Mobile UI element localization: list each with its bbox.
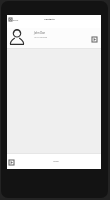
staticText: Back bbox=[13, 18, 19, 21]
button[interactable]: Open contact bbox=[92, 37, 97, 42]
button[interactable]: John Doe bbox=[7, 28, 101, 48]
staticText: +27123456789 bbox=[34, 36, 47, 39]
staticText: Home bbox=[53, 160, 59, 163]
staticText: John Doe bbox=[34, 31, 46, 35]
button[interactable]: Back bbox=[9, 18, 19, 21]
staticText: Contacts bbox=[44, 17, 55, 20]
button[interactable]: Gallery bbox=[9, 160, 14, 165]
button[interactable]: Home bbox=[53, 160, 59, 163]
